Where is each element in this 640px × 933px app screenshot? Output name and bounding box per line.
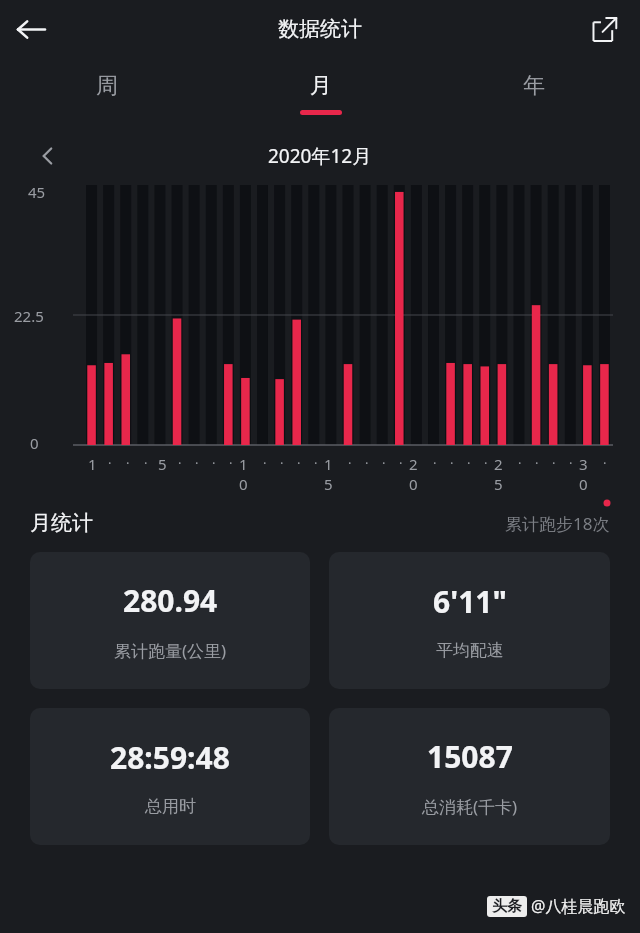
button[interactable]: Share [582, 6, 628, 52]
button[interactable]: 年 [427, 58, 640, 110]
button[interactable]: 6'11" [329, 552, 610, 689]
staticText: 0 [30, 433, 39, 453]
staticText: 25 [494, 454, 511, 494]
staticText: · [229, 454, 233, 472]
staticText: 20 [409, 454, 426, 494]
staticText: · [552, 454, 556, 472]
staticText: · [195, 454, 199, 472]
staticText: 总消耗(千卡) [422, 795, 518, 818]
staticText: 45 [28, 182, 46, 202]
staticText: · [108, 454, 112, 472]
button[interactable]: 周 [0, 58, 214, 110]
staticText: · [433, 454, 437, 472]
staticText: 数据统计 [278, 16, 362, 42]
button[interactable]: Previous month [28, 136, 68, 176]
staticText: 1 [88, 454, 97, 474]
staticText: · [297, 454, 301, 472]
staticText: · [263, 454, 267, 472]
staticText: · [280, 454, 284, 472]
staticText: · [212, 454, 216, 472]
staticText: · [144, 454, 148, 472]
staticText: 15 [324, 454, 341, 494]
staticText: 6'11" [433, 581, 507, 622]
staticText: · [382, 454, 386, 472]
staticText: 累计跑步18次 [505, 512, 610, 535]
staticText: 累计跑量(公里) [114, 639, 227, 662]
staticText: · [178, 454, 182, 472]
staticText: 月 [310, 72, 332, 100]
staticText: 月统计 [30, 510, 93, 536]
staticText: 28:59:48 [110, 737, 230, 778]
staticText: · [365, 454, 369, 472]
staticText: · [348, 454, 352, 472]
staticText: 30 [579, 454, 596, 494]
staticText: 平均配速 [436, 640, 504, 661]
staticText: · [518, 454, 522, 472]
button[interactable]: 15087 [329, 708, 610, 845]
staticText: @八桂晨跑欧 [531, 895, 626, 917]
staticText: 头条 [492, 897, 522, 916]
staticText: · [450, 454, 454, 472]
staticText: · [126, 454, 130, 472]
staticText: 2020年12月 [268, 143, 372, 169]
staticText: · [603, 454, 607, 472]
button[interactable]: 月 [214, 58, 427, 115]
button[interactable]: 28:59:48 [30, 708, 310, 845]
button[interactable]: Back [6, 4, 56, 54]
staticText: 5 [158, 454, 167, 474]
staticText: 22.5 [14, 306, 44, 326]
staticText: · [535, 454, 539, 472]
staticText: 周 [96, 72, 118, 100]
staticText: · [399, 454, 403, 472]
staticText: 总用时 [145, 796, 196, 817]
staticText: · [569, 454, 573, 472]
staticText: 年 [523, 72, 545, 100]
staticText: 10 [239, 454, 256, 494]
button[interactable]: 280.94 [30, 552, 310, 689]
staticText: 15087 [427, 736, 513, 777]
staticText: · [314, 454, 318, 472]
staticText: · [484, 454, 488, 472]
staticText: 280.94 [123, 580, 218, 621]
staticText: · [467, 454, 471, 472]
